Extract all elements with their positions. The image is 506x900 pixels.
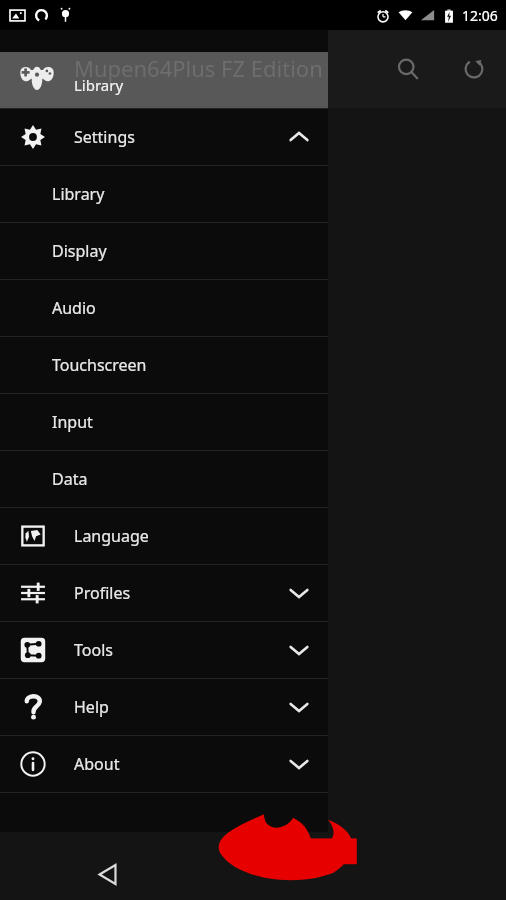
staticText: Settings [74, 126, 135, 148]
button[interactable]: Profiles [0, 565, 328, 621]
staticText: Data [52, 468, 88, 490]
button[interactable]: Mupen64Plus FZ Edition [0, 52, 328, 108]
staticText: Tools [74, 639, 113, 661]
button[interactable]: Search [385, 46, 431, 92]
button[interactable]: About [0, 736, 328, 792]
button[interactable]: Input [0, 394, 328, 450]
staticText: Language [74, 525, 149, 547]
staticText: About [74, 753, 120, 775]
button[interactable]: Back [84, 851, 130, 897]
staticText: Mupen64Plus FZ Edition [74, 53, 323, 83]
staticText: Input [52, 411, 93, 433]
button[interactable]: Touchscreen [0, 337, 328, 393]
staticText: Library [74, 75, 124, 95]
button[interactable]: Tools [0, 622, 328, 678]
button[interactable]: Audio [0, 280, 328, 336]
button[interactable]: Library [0, 166, 328, 222]
staticText: Library [52, 183, 105, 205]
button[interactable]: Data [0, 451, 328, 507]
staticText: Audio [52, 297, 96, 319]
button[interactable]: Settings [0, 109, 328, 165]
button[interactable]: Language [0, 508, 328, 564]
staticText: Touchscreen [52, 354, 147, 376]
staticText: Help [74, 696, 109, 718]
staticText: Profiles [74, 582, 131, 604]
button[interactable]: Help [0, 679, 328, 735]
button[interactable]: Refresh [451, 46, 497, 92]
button[interactable]: Display [0, 223, 328, 279]
staticText: 12:06 [462, 6, 498, 25]
staticText: Display [52, 240, 107, 262]
